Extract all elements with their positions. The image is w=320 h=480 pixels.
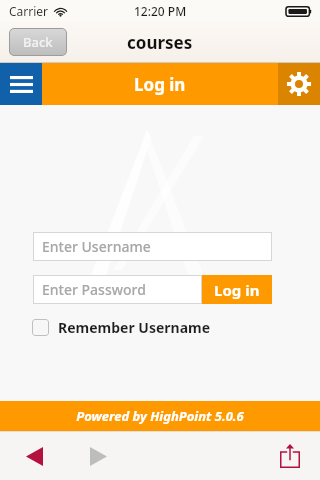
staticText: Log in (134, 73, 186, 96)
staticText: Powered by HighPoint 5.0.6 (76, 407, 244, 425)
button[interactable]: Log in (202, 275, 272, 304)
button[interactable]: Back (14, 436, 54, 476)
staticText: Carrier (9, 3, 49, 19)
button[interactable]: Back (9, 28, 67, 56)
staticText: courses (127, 31, 193, 54)
staticText: Remember Username (58, 318, 211, 337)
button[interactable]: Enter Username (33, 232, 272, 261)
staticText: Back (23, 33, 53, 51)
staticText: Log in (214, 280, 260, 300)
button[interactable]: Enter Password (33, 275, 202, 304)
button[interactable]: Share (270, 436, 310, 476)
button[interactable]: Remember Username (32, 316, 211, 338)
button[interactable]: Forward (78, 436, 118, 476)
staticText: Enter Username (42, 237, 151, 256)
button[interactable]: Settings (278, 63, 320, 105)
staticText: Enter Password (42, 280, 146, 299)
button[interactable]: Menu (0, 63, 42, 105)
staticText: 12:20 PM (134, 3, 187, 19)
